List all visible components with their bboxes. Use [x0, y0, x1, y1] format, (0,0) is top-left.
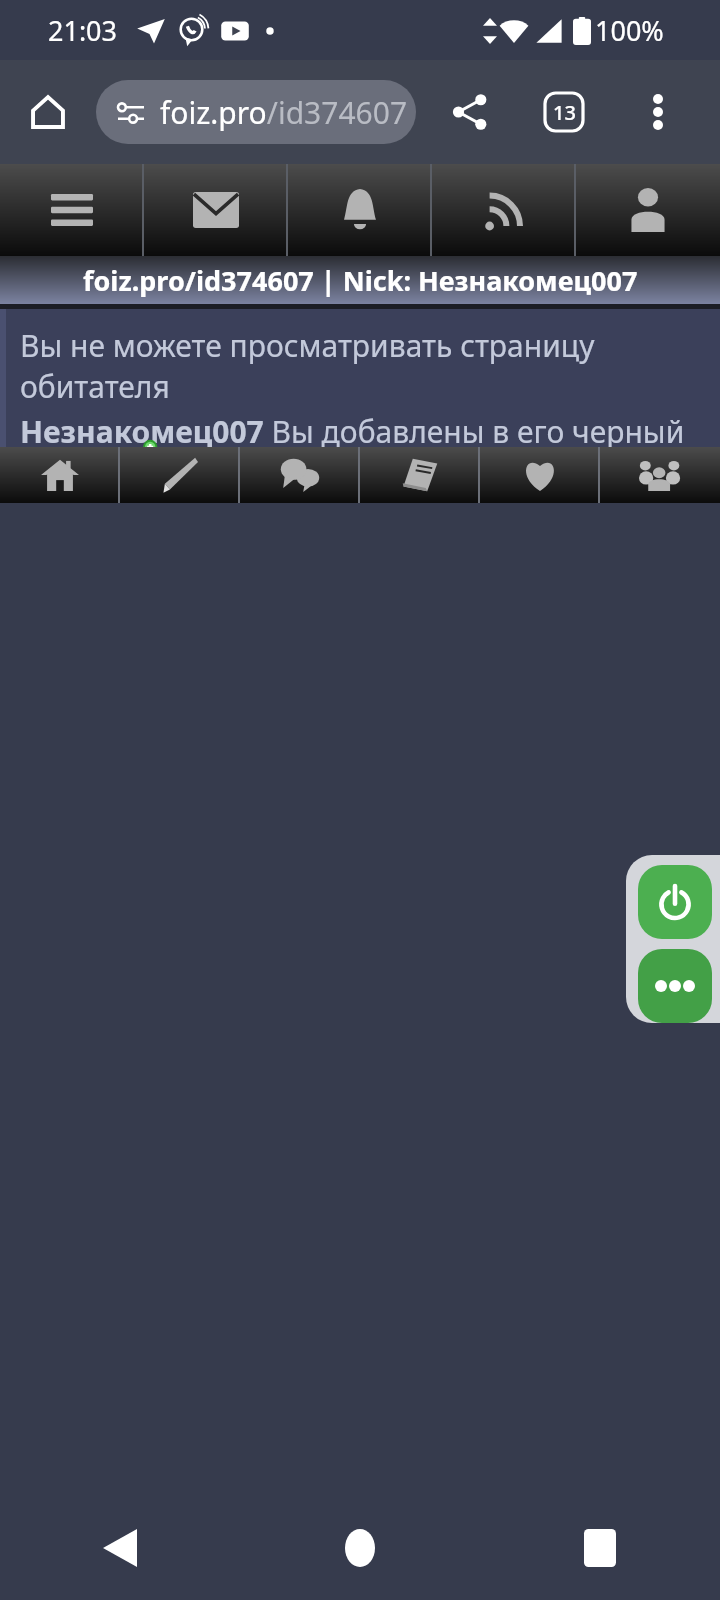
- staticText: foiz.pro/id374607: [160, 92, 408, 133]
- button[interactable]: Blog: [360, 447, 480, 503]
- button[interactable]: Feed: [432, 164, 576, 256]
- button[interactable]: Share: [434, 76, 506, 148]
- button[interactable]: Likes: [480, 447, 600, 503]
- button[interactable]: Chat: [240, 447, 360, 503]
- button[interactable]: Write: [120, 447, 240, 503]
- staticText: Вы не можете просматривать страницу обит…: [20, 325, 706, 407]
- button[interactable]: Messages: [144, 164, 288, 256]
- button[interactable]: Home: [14, 78, 82, 146]
- button[interactable]: Notifications: [288, 164, 432, 256]
- staticText: 21:03: [48, 12, 118, 49]
- button[interactable]: Back: [0, 1496, 240, 1600]
- staticText: foiz.pro/id374607 | Nick: Незнакомец007: [83, 262, 638, 299]
- button[interactable]: Power: [638, 865, 712, 939]
- button[interactable]: Recent apps: [480, 1496, 720, 1600]
- staticText: 13: [553, 99, 576, 126]
- staticText: 100%: [595, 12, 664, 49]
- button[interactable]: More actions: [638, 949, 712, 1023]
- button[interactable]: foiz.pro/id374607: [96, 80, 416, 144]
- button[interactable]: Tabs: 13: [528, 76, 600, 148]
- staticText: Незнакомец007 Вы добавлены в его черный: [20, 411, 685, 447]
- button[interactable]: Menu: [0, 164, 144, 256]
- button[interactable]: Home: [240, 1496, 480, 1600]
- button[interactable]: More options: [622, 76, 694, 148]
- button[interactable]: Friends: [600, 447, 720, 503]
- button[interactable]: Home: [0, 447, 120, 503]
- button[interactable]: Profile: [576, 164, 720, 256]
